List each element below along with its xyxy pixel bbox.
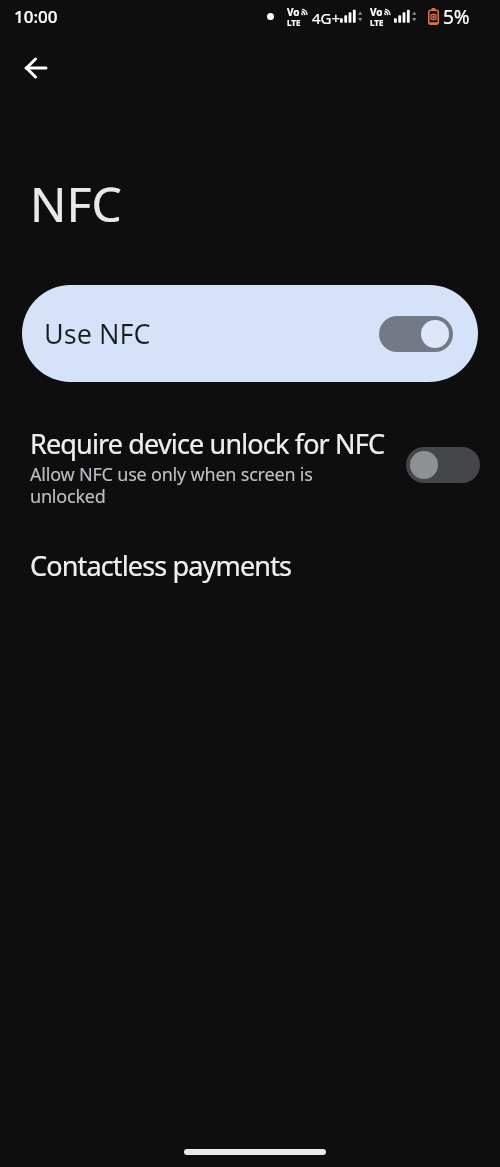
staticText: 4G+ — [312, 8, 341, 28]
staticText: Vo — [287, 5, 300, 19]
staticText: Vo — [370, 5, 383, 19]
button[interactable] — [379, 316, 453, 352]
button[interactable] — [406, 447, 480, 483]
staticText: Use NFC — [44, 315, 151, 352]
button[interactable]: Require device unlock for NFC — [0, 418, 500, 513]
staticText: Contactless payments — [30, 547, 292, 584]
staticText: NFC — [30, 171, 122, 236]
button[interactable] — [12, 44, 60, 92]
button[interactable]: Contactless payments — [0, 532, 500, 598]
staticText: 10:00 — [14, 5, 58, 28]
staticText: Allow NFC use only when screen is unlock… — [30, 462, 313, 509]
staticText: LTE — [287, 17, 301, 28]
staticText: 5% — [443, 4, 470, 30]
button[interactable]: Use NFC — [22, 285, 478, 382]
staticText: LTE — [370, 17, 384, 28]
staticText: Require device unlock for NFC — [30, 425, 385, 462]
